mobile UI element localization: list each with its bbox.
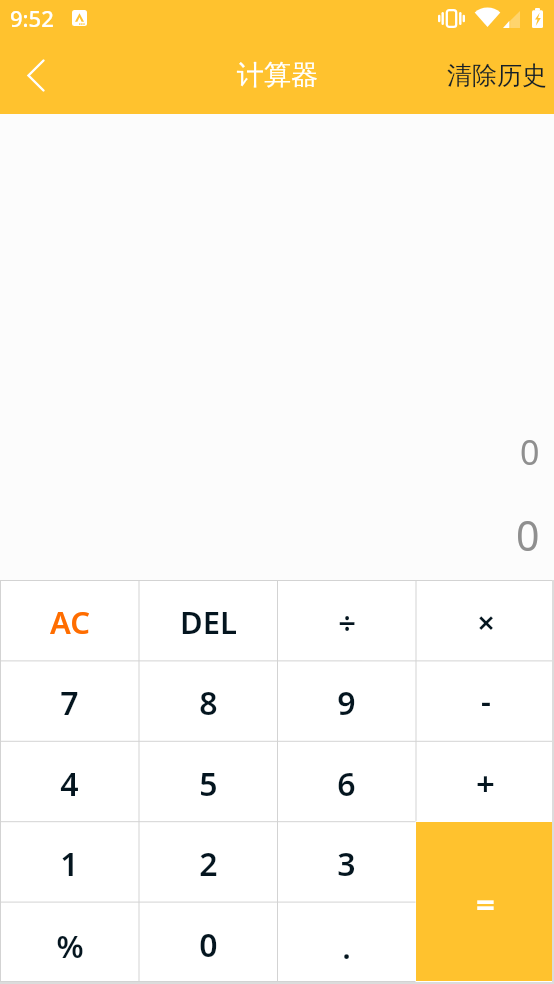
button[interactable]: 0	[139, 902, 278, 982]
staticText: 3	[337, 842, 356, 886]
staticText: 0	[520, 429, 540, 475]
staticText: =	[476, 882, 495, 927]
button[interactable]: 4	[0, 741, 139, 821]
staticText: 7	[60, 681, 79, 725]
staticText: .	[342, 926, 351, 968]
staticText: 2	[199, 842, 218, 886]
button[interactable]: 3	[277, 821, 416, 901]
button[interactable]: -	[416, 660, 554, 740]
button[interactable]: DEL	[139, 580, 278, 660]
staticText: ×	[477, 601, 495, 643]
staticText: 4	[60, 762, 79, 806]
staticText: 0	[516, 507, 540, 563]
button[interactable]: ×	[416, 580, 554, 660]
staticText: 9	[337, 681, 356, 725]
staticText: 5	[199, 762, 218, 806]
staticText: 计算器	[237, 58, 318, 92]
staticText: AC	[50, 601, 90, 643]
button[interactable]: %	[0, 902, 139, 982]
staticText: -	[481, 680, 491, 722]
staticText: 1	[60, 842, 79, 886]
button[interactable]: 6	[277, 741, 416, 821]
button[interactable]: AC	[0, 580, 139, 660]
staticText: %	[56, 925, 84, 967]
button[interactable]: Back	[8, 47, 64, 103]
staticText: 6	[337, 762, 356, 806]
button[interactable]: 2	[139, 821, 278, 901]
button[interactable]: +	[416, 741, 554, 821]
button[interactable]: 8	[139, 660, 278, 740]
staticText: 8	[199, 681, 218, 725]
button[interactable]: 1	[0, 821, 139, 901]
staticText: ÷	[338, 601, 356, 643]
button[interactable]: ÷	[277, 580, 416, 660]
staticText: 0	[199, 923, 218, 967]
button[interactable]: =	[416, 822, 554, 981]
button[interactable]: 清除历史	[437, 36, 554, 114]
staticText: 清除历史	[447, 60, 547, 91]
staticText: +	[476, 761, 495, 806]
staticText: 9:52	[10, 3, 54, 33]
button[interactable]: .	[277, 902, 416, 982]
button[interactable]: 9	[277, 660, 416, 740]
button[interactable]: 7	[0, 660, 139, 740]
button[interactable]: 5	[139, 741, 278, 821]
staticText: DEL	[180, 601, 237, 643]
